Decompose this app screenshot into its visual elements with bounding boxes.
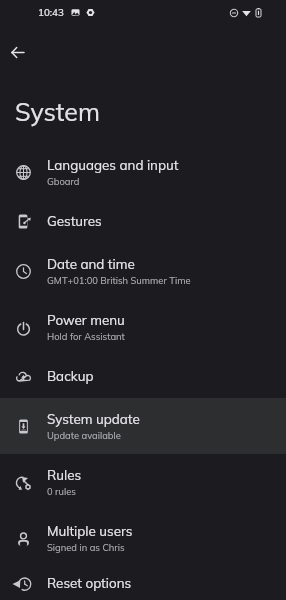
- staticText: Power menu: [47, 312, 125, 329]
- button[interactable]: Languages and input: [0, 144, 286, 200]
- button[interactable]: Gestures: [0, 200, 286, 243]
- staticText: GMT+01:00 British Summer Time: [47, 275, 191, 287]
- staticText: Multiple users: [47, 523, 133, 540]
- staticText: Backup: [47, 368, 94, 385]
- button[interactable]: Multiple users: [0, 510, 286, 566]
- staticText: System update: [47, 411, 140, 428]
- button[interactable]: Reset options: [0, 566, 286, 600]
- staticText: System: [15, 96, 100, 127]
- staticText: Signed in as Chris: [47, 542, 125, 554]
- staticText: Rules: [47, 467, 82, 484]
- button[interactable]: Back: [0, 35, 35, 70]
- button[interactable]: Backup: [0, 355, 286, 398]
- staticText: Date and time: [47, 256, 135, 273]
- button[interactable]: Date and time: [0, 243, 286, 299]
- staticText: Gboard: [47, 176, 80, 188]
- button[interactable]: System update: [0, 398, 286, 454]
- staticText: Hold for Assistant: [47, 331, 125, 343]
- staticText: Update available: [47, 430, 121, 442]
- button[interactable]: Power menu: [0, 299, 286, 355]
- staticText: 10:43: [38, 6, 64, 18]
- staticText: Gestures: [47, 213, 102, 230]
- button[interactable]: Rules: [0, 454, 286, 510]
- staticText: Reset options: [47, 575, 132, 592]
- staticText: 0 rules: [47, 486, 76, 498]
- staticText: Languages and input: [47, 157, 179, 174]
